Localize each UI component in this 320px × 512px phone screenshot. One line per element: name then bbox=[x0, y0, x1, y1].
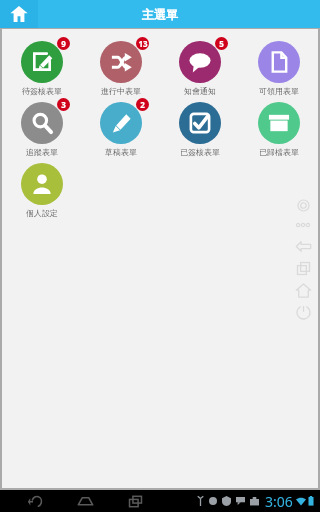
staticText: 5 bbox=[219, 38, 224, 49]
button[interactable]: 已簽核表單 bbox=[161, 96, 239, 157]
button[interactable]: Back bbox=[292, 235, 314, 257]
button[interactable]: 13 bbox=[82, 35, 160, 96]
button[interactable]: Back bbox=[22, 490, 48, 512]
staticText: 進行中表單 bbox=[101, 86, 141, 96]
staticText: 已簽核表單 bbox=[180, 147, 220, 157]
staticText: 個人設定 bbox=[26, 208, 58, 218]
staticText: 可領用表單 bbox=[259, 86, 299, 96]
button[interactable]: Menu bbox=[293, 215, 313, 235]
button[interactable]: Recents bbox=[292, 257, 314, 279]
staticText: 知會通知 bbox=[184, 86, 216, 96]
staticText: 追蹤表單 bbox=[26, 147, 58, 157]
staticText: 13 bbox=[138, 38, 148, 49]
button[interactable]: Assist bbox=[293, 195, 313, 215]
button[interactable]: Recent apps bbox=[122, 490, 148, 512]
button[interactable]: 已歸檔表單 bbox=[240, 96, 318, 157]
staticText: 9 bbox=[61, 38, 66, 49]
staticText: 待簽核表單 bbox=[22, 86, 62, 96]
staticText: 已歸檔表單 bbox=[259, 147, 299, 157]
staticText: 草稿表單 bbox=[105, 147, 137, 157]
staticText: 3:06 bbox=[265, 492, 293, 511]
button[interactable]: 3 bbox=[3, 96, 81, 157]
button[interactable]: Home bbox=[0, 0, 38, 28]
button[interactable]: Home bbox=[72, 490, 98, 512]
staticText: 主選單 bbox=[142, 7, 178, 22]
staticText: 3 bbox=[61, 99, 66, 110]
button[interactable]: Power bbox=[292, 301, 314, 323]
button[interactable]: 個人設定 bbox=[3, 157, 81, 218]
button[interactable]: 可領用表單 bbox=[240, 35, 318, 96]
button[interactable]: 9 bbox=[3, 35, 81, 96]
button[interactable]: Home bbox=[292, 279, 314, 301]
staticText: 2 bbox=[140, 99, 145, 110]
button[interactable]: 2 bbox=[82, 96, 160, 157]
button[interactable]: 5 bbox=[161, 35, 239, 96]
